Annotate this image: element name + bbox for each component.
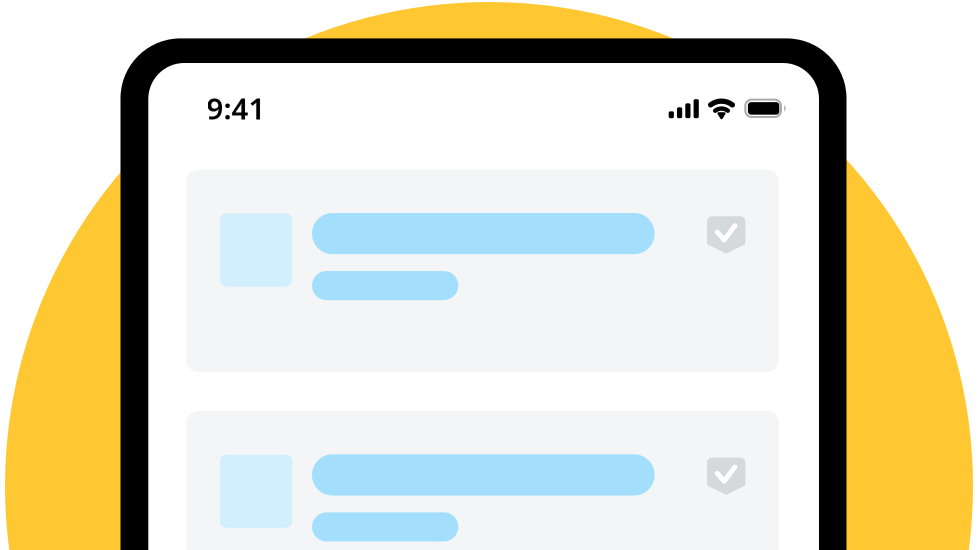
button[interactable]: List item <box>186 411 779 550</box>
staticText: 9:41 <box>206 88 265 127</box>
button[interactable]: List item <box>186 170 779 372</box>
